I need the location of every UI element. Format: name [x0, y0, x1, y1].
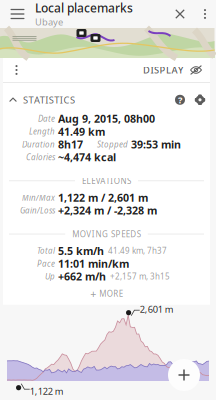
staticText: 11:01 min/km: [58, 256, 129, 271]
staticText: 39:53 min: [131, 137, 181, 151]
staticText: +662 m/h: [58, 269, 106, 283]
staticText: MOVING SPEEDS: [72, 229, 141, 239]
staticText: ~4,474 kcal: [58, 150, 116, 164]
staticText: 41.49 km: [58, 124, 105, 139]
button[interactable]: More options: [194, 0, 216, 28]
staticText: Length: [29, 126, 55, 137]
staticText: Local placemarks: [35, 0, 133, 16]
staticText: Aug 9, 2015, 08h00: [58, 112, 155, 126]
button[interactable]: Track options: [3, 58, 30, 82]
staticText: Up: [45, 271, 55, 282]
staticText: 2,601 m: [140, 303, 174, 315]
staticText: +2,157 m, 3h15: [110, 271, 170, 282]
button[interactable]: Add: [168, 359, 200, 391]
button[interactable]: DISPLAY: [143, 58, 210, 82]
staticText: Duration: [22, 139, 55, 150]
button[interactable]: Menu: [0, 0, 35, 28]
button[interactable]: Help: [170, 90, 190, 110]
staticText: +: [90, 287, 96, 301]
staticText: 1,122 m: [30, 385, 64, 397]
staticText: STATISTICS: [23, 94, 75, 106]
staticText: MORE: [99, 288, 123, 299]
staticText: Calories: [26, 152, 55, 162]
staticText: 41.49 km, 7h37: [108, 245, 167, 256]
button[interactable]: Settings: [190, 90, 210, 110]
staticText: Total: [37, 245, 55, 256]
button[interactable]: +: [3, 283, 210, 305]
staticText: Pace: [37, 258, 55, 269]
button[interactable]: STATISTICS: [3, 90, 75, 110]
staticText: ?: [178, 94, 182, 106]
staticText: Stopped: [97, 139, 128, 150]
staticText: Date: [38, 113, 55, 124]
staticText: 1,122 m / 2,601 m: [58, 190, 148, 205]
staticText: Min/Max: [22, 192, 55, 203]
button[interactable]: Close: [166, 0, 194, 28]
staticText: 8h17: [58, 137, 83, 151]
staticText: ELEVATIONS: [82, 175, 131, 186]
staticText: 5.5 km/h: [58, 244, 104, 258]
staticText: +2,324 m / -2,328 m: [58, 203, 157, 217]
staticText: DISPLAY: [143, 64, 183, 76]
staticText: Ubaye: [35, 16, 63, 28]
staticText: Gain/Loss: [20, 205, 55, 216]
